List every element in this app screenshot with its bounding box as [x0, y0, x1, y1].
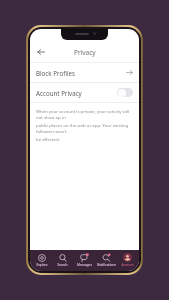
button[interactable]: Account Privacy toggle: [117, 88, 133, 97]
staticText: Notifications: [97, 263, 116, 267]
staticText: public places on the web or app. Your ex…: [36, 122, 131, 134]
staticText: Block Profiles: [36, 69, 75, 77]
staticText: Search: [57, 263, 68, 267]
staticText: When your account is private, your activ…: [36, 108, 131, 120]
staticText: Messages: [77, 263, 92, 267]
button[interactable]: Search: [52, 253, 73, 267]
button[interactable]: Back: [33, 44, 49, 60]
staticText: Account: [121, 263, 134, 267]
button[interactable]: Account Privacy: [30, 83, 139, 102]
staticText: be affected.: [36, 136, 60, 142]
button[interactable]: Block Profiles: [30, 63, 139, 82]
button[interactable]: Account: [117, 253, 138, 267]
staticText: Privacy: [74, 48, 96, 57]
button[interactable]: Messages: [74, 253, 95, 267]
staticText: Explore: [36, 263, 48, 267]
button[interactable]: Explore: [31, 253, 52, 267]
staticText: Account Privacy: [36, 89, 82, 97]
button[interactable]: Notifications: [96, 253, 117, 267]
